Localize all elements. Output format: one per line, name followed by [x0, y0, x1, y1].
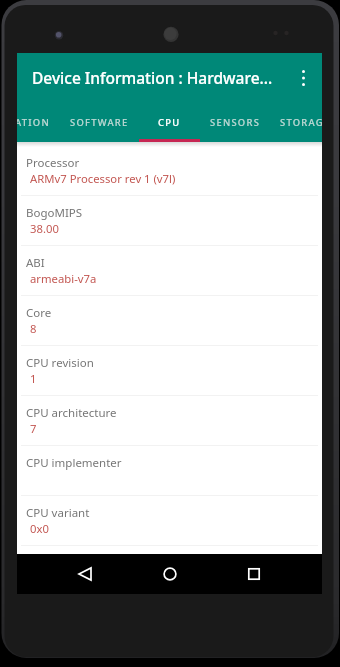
staticText: CPU	[158, 116, 181, 129]
staticText: 0x0	[30, 521, 49, 536]
button[interactable]: More options	[284, 53, 322, 102]
button[interactable]: CPU	[124, 102, 214, 142]
button[interactable]: STORAGE	[260, 102, 322, 142]
button[interactable]: CPU revision	[17, 346, 322, 396]
button[interactable]: BogoMIPS	[17, 196, 322, 246]
staticText: BogoMIPS	[26, 205, 83, 221]
button[interactable]: CPU implementer	[17, 446, 322, 496]
staticText: CPU variant	[26, 505, 90, 521]
staticText: 1	[30, 371, 37, 386]
button[interactable]: CPU variant	[17, 496, 322, 546]
staticText: SENSORS	[210, 116, 261, 129]
button[interactable]: SENSORS	[190, 102, 280, 142]
staticText: SOFTWARE	[70, 116, 129, 129]
button[interactable]: Core	[17, 296, 322, 346]
button[interactable]: Processor	[17, 146, 322, 196]
staticText: STORAGE	[280, 116, 322, 129]
staticText: armeabi-v7a	[30, 271, 97, 286]
button[interactable]: ABI	[17, 246, 322, 296]
staticText: Device Information : Hardware...	[32, 67, 273, 88]
staticText: 38.00	[30, 221, 59, 236]
button[interactable]: Home	[150, 554, 190, 594]
staticText: INFORMATION	[17, 116, 50, 129]
staticText: CPU architecture	[26, 405, 117, 421]
button[interactable]: INFORMATION	[17, 102, 55, 142]
staticText: Processor	[26, 155, 80, 171]
staticText: Core	[26, 305, 52, 321]
button[interactable]: SOFTWARE	[54, 102, 144, 142]
staticText: ABI	[26, 255, 45, 271]
staticText: ARMv7 Processor rev 1 (v7l)	[30, 171, 176, 186]
staticText: CPU revision	[26, 355, 94, 371]
button[interactable]: CPU architecture	[17, 396, 322, 446]
staticText: CPU implementer	[26, 455, 122, 471]
staticText: 7	[30, 421, 37, 436]
staticText: 8	[30, 321, 37, 336]
button[interactable]: Recents	[234, 554, 274, 594]
button[interactable]: Back	[65, 554, 105, 594]
